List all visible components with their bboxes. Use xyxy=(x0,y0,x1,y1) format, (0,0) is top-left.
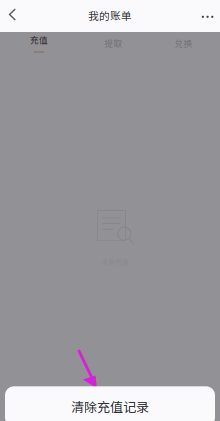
button[interactable]: 清除充值记录 xyxy=(5,386,215,421)
staticText: 提取 xyxy=(104,37,122,49)
button[interactable]: 提取 xyxy=(78,29,148,56)
button[interactable]: Back xyxy=(0,0,26,28)
staticText: 清除充值记录 xyxy=(71,397,149,416)
staticText: 兑换 xyxy=(174,37,192,49)
button[interactable]: 充值 xyxy=(3,26,73,60)
staticText: 充值 xyxy=(30,33,48,46)
staticText: 我的账单 xyxy=(88,8,132,23)
button[interactable]: 兑换 xyxy=(148,29,218,56)
button[interactable]: More options xyxy=(195,4,220,30)
